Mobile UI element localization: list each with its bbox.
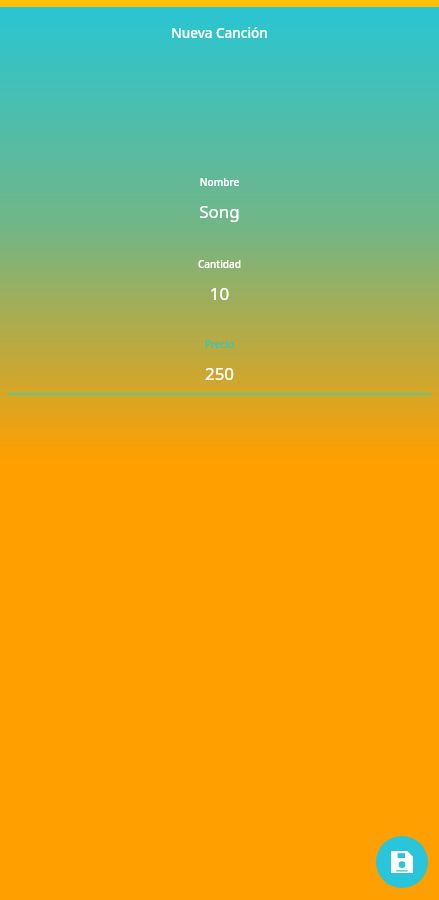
button[interactable]: Save xyxy=(376,836,428,888)
staticText: Cantidad xyxy=(8,257,431,271)
button[interactable]: Precio xyxy=(0,337,439,395)
staticText: Nombre xyxy=(8,175,431,189)
button[interactable]: Nombre xyxy=(0,175,439,223)
staticText: Nueva Canción xyxy=(0,24,439,42)
staticText: 250 xyxy=(8,362,431,385)
staticText: Precio xyxy=(8,337,431,351)
button[interactable]: Cantidad xyxy=(0,257,439,305)
staticText: 10 xyxy=(8,282,431,305)
staticText: Song xyxy=(8,200,431,223)
